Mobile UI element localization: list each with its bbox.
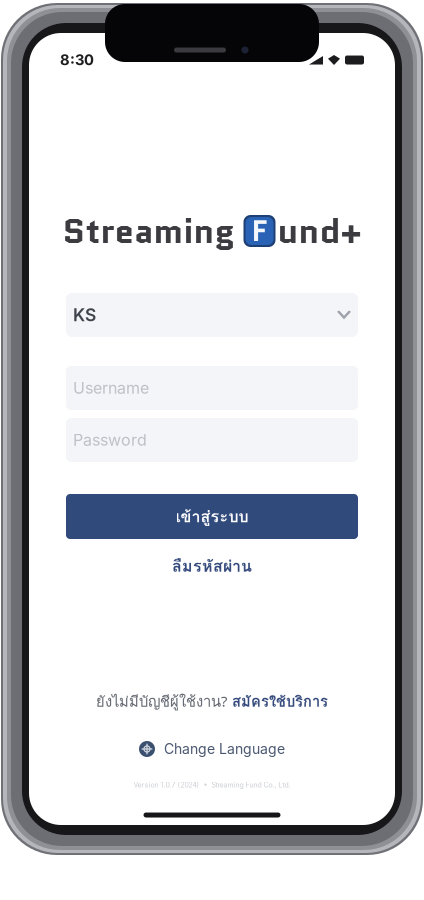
button[interactable]: KS — [66, 293, 358, 337]
staticText: ยังไม่มีบัญชีผู้ใช้งาน? — [96, 690, 227, 713]
staticText: Change Language — [164, 740, 285, 757]
staticText: Username — [73, 378, 149, 398]
button[interactable]: Username — [66, 366, 358, 410]
button[interactable]: ลืมรหัสผ่าน — [29, 556, 395, 576]
staticText: ลืมรหัสผ่าน — [172, 554, 252, 578]
button[interactable]: เข้าสู่ระบบ — [66, 494, 358, 539]
button[interactable]: สมัครใช้บริการ — [232, 690, 328, 713]
staticText: Version 1.0.7 (2024) • Streaming Fund Co… — [133, 781, 290, 789]
staticText: เข้าสู่ระบบ — [175, 504, 248, 529]
staticText: Streaming — [62, 206, 234, 256]
staticText: KS — [73, 304, 96, 325]
staticText: 8:30 — [60, 51, 94, 69]
staticText: Password — [73, 430, 147, 450]
button[interactable]: Change Language — [139, 740, 285, 757]
staticText: F — [251, 210, 267, 252]
staticText: สมัครใช้บริการ — [232, 690, 328, 713]
staticText: und+ — [277, 206, 361, 256]
button[interactable]: Password — [66, 418, 358, 462]
